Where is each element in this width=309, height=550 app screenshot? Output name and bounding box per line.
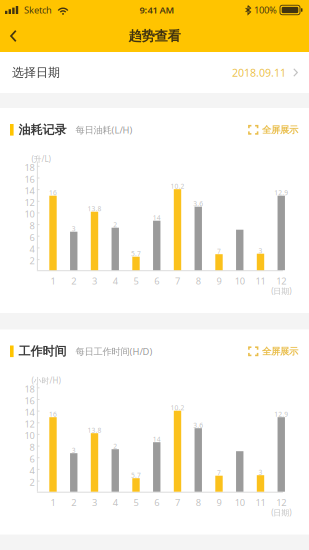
- staticText: 2: [113, 442, 117, 451]
- staticText: 3: [72, 224, 76, 233]
- staticText: 9:41 AM: [139, 4, 174, 16]
- staticText: 3: [258, 246, 262, 255]
- staticText: 5.7: [131, 249, 141, 258]
- staticText: 2: [30, 476, 35, 488]
- staticText: 3.6: [193, 199, 203, 208]
- staticText: 10.2: [170, 403, 184, 412]
- staticText: 4: [30, 464, 35, 477]
- staticText: (日期): [271, 507, 291, 518]
- staticText: 6: [154, 496, 159, 509]
- staticText: 每日工作时间(H/D): [76, 345, 153, 357]
- staticText: 14: [153, 213, 161, 222]
- staticText: 16: [25, 394, 35, 407]
- staticText: 14: [25, 406, 35, 418]
- staticText: 每日油耗(L/H): [76, 124, 133, 136]
- staticText: 12.9: [274, 410, 288, 419]
- staticText: 4: [30, 243, 35, 255]
- staticText: 12: [276, 496, 286, 509]
- staticText: 10.2: [170, 182, 184, 191]
- staticText: 油耗记录: [19, 122, 67, 137]
- staticText: 5.7: [131, 471, 141, 480]
- staticText: 8: [196, 275, 201, 287]
- staticText: 6: [154, 275, 159, 287]
- staticText: 3: [92, 275, 97, 287]
- staticText: 7: [175, 496, 180, 509]
- staticText: 13.8: [87, 204, 101, 213]
- staticText: 趋势查看: [128, 28, 180, 44]
- staticText: 7: [175, 275, 180, 287]
- staticText: 6: [30, 231, 35, 243]
- staticText: 5: [133, 275, 138, 287]
- staticText: 3: [72, 446, 76, 455]
- staticText: 2: [30, 254, 35, 267]
- staticText: 1: [50, 275, 55, 287]
- button[interactable]: 全屏展示: [242, 119, 298, 141]
- staticText: 7: [217, 468, 221, 477]
- staticText: 选择日期: [12, 65, 60, 80]
- staticText: 12: [276, 275, 286, 287]
- button[interactable]: 选择日期: [0, 52, 309, 93]
- staticText: 16: [25, 173, 35, 185]
- staticText: 6: [30, 453, 35, 465]
- button[interactable]: 返回: [0, 20, 28, 51]
- staticText: 8: [30, 219, 35, 232]
- staticText: 2: [71, 275, 76, 287]
- staticText: 2018.09.11: [232, 65, 286, 80]
- staticText: 12: [25, 418, 35, 430]
- staticText: 16: [49, 188, 57, 197]
- staticText: 9: [216, 275, 221, 287]
- button[interactable]: 全屏展示: [242, 341, 298, 362]
- staticText: 10: [235, 275, 245, 287]
- staticText: 8: [30, 441, 35, 453]
- staticText: 3: [92, 496, 97, 509]
- staticText: 14: [153, 435, 161, 444]
- staticText: (日期): [271, 286, 291, 296]
- staticText: 3.6: [193, 421, 203, 430]
- staticText: 8: [196, 496, 201, 509]
- staticText: 全屏展示: [262, 346, 298, 357]
- staticText: (小时/H): [31, 375, 60, 386]
- staticText: 100%: [254, 4, 277, 16]
- staticText: 10: [235, 496, 245, 509]
- staticText: 18: [25, 161, 35, 174]
- staticText: Sketch: [24, 4, 52, 16]
- staticText: 4: [113, 275, 118, 287]
- staticText: 9: [216, 496, 221, 509]
- staticText: 10: [25, 208, 35, 220]
- staticText: 13.8: [87, 426, 101, 435]
- staticText: 全屏展示: [262, 124, 298, 136]
- staticText: 1: [50, 496, 55, 509]
- staticText: 12.9: [274, 188, 288, 197]
- staticText: (升/L): [31, 154, 50, 164]
- staticText: 2: [71, 496, 76, 509]
- staticText: 11: [255, 275, 265, 287]
- staticText: 12: [25, 196, 35, 209]
- staticText: 18: [25, 383, 35, 395]
- staticText: 7: [217, 247, 221, 256]
- staticText: 4: [113, 496, 118, 509]
- staticText: 10: [25, 429, 35, 442]
- staticText: 5: [133, 496, 138, 509]
- staticText: 14: [25, 184, 35, 197]
- staticText: 16: [49, 410, 57, 419]
- staticText: 2: [113, 220, 117, 229]
- staticText: 3: [258, 468, 262, 477]
- staticText: 工作时间: [19, 344, 67, 359]
- staticText: 11: [255, 496, 265, 509]
